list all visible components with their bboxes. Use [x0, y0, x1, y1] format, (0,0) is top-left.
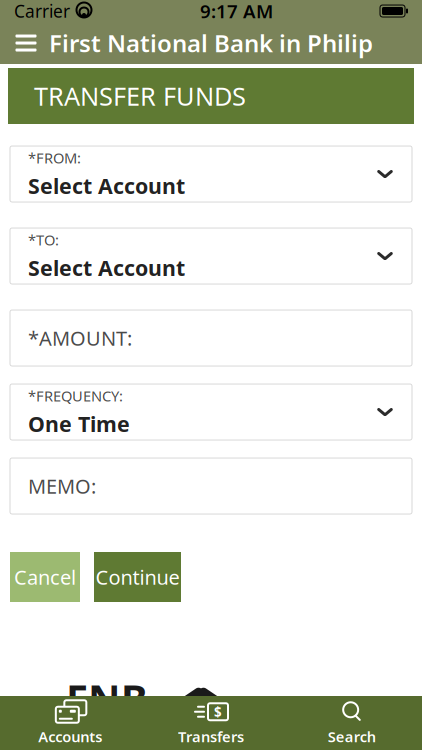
button[interactable]: Cancel — [10, 552, 80, 602]
button[interactable]: MEMO: — [10, 458, 412, 514]
staticText: 9:17 AM — [200, 0, 273, 23]
staticText: *FROM: — [28, 148, 81, 168]
staticText: Transfers — [178, 727, 244, 746]
button[interactable]: Continue — [94, 552, 181, 602]
staticText: *AMOUNT: — [28, 325, 132, 351]
staticText: Select Account — [28, 254, 185, 282]
staticText: TRANSFER FUNDS — [34, 79, 246, 113]
button[interactable]: *FREQUENCY: — [10, 384, 412, 440]
button[interactable]: *FROM: — [10, 146, 412, 202]
button[interactable]: $ — [141, 696, 281, 750]
staticText: MEMO: — [28, 473, 96, 499]
staticText: Select Account — [28, 172, 185, 200]
staticText: Continue — [95, 564, 179, 590]
staticText: One Time — [28, 410, 130, 438]
staticText: Carrier — [14, 0, 70, 22]
staticText: Search — [328, 727, 376, 746]
staticText: Cancel — [14, 564, 76, 590]
staticText: $ — [214, 703, 222, 721]
button[interactable]: *TO: — [10, 228, 412, 284]
button[interactable]: Search — [281, 696, 422, 750]
staticText: FNB — [66, 671, 148, 724]
staticText: *FREQUENCY: — [28, 386, 123, 406]
staticText: Accounts — [38, 727, 102, 746]
button[interactable]: Accounts — [0, 696, 141, 750]
staticText: First National Bank in Philip — [49, 27, 373, 59]
button[interactable]: Menu — [4, 21, 48, 65]
staticText: *TO: — [28, 230, 59, 250]
button[interactable]: *AMOUNT: — [10, 310, 412, 366]
